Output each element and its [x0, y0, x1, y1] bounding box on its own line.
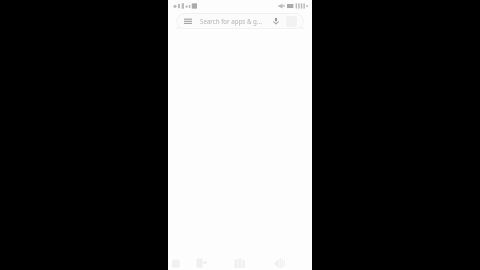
button[interactable]: Apps — [193, 255, 209, 270]
other: Menu — [184, 18, 192, 24]
button[interactable]: Home — [168, 255, 184, 270]
staticText: Search for apps & g... — [200, 17, 272, 25]
button[interactable]: Recents — [231, 255, 247, 270]
button[interactable]: Sound — [271, 255, 287, 270]
other: Voice search — [272, 17, 280, 25]
button[interactable]: Menu — [176, 13, 304, 29]
